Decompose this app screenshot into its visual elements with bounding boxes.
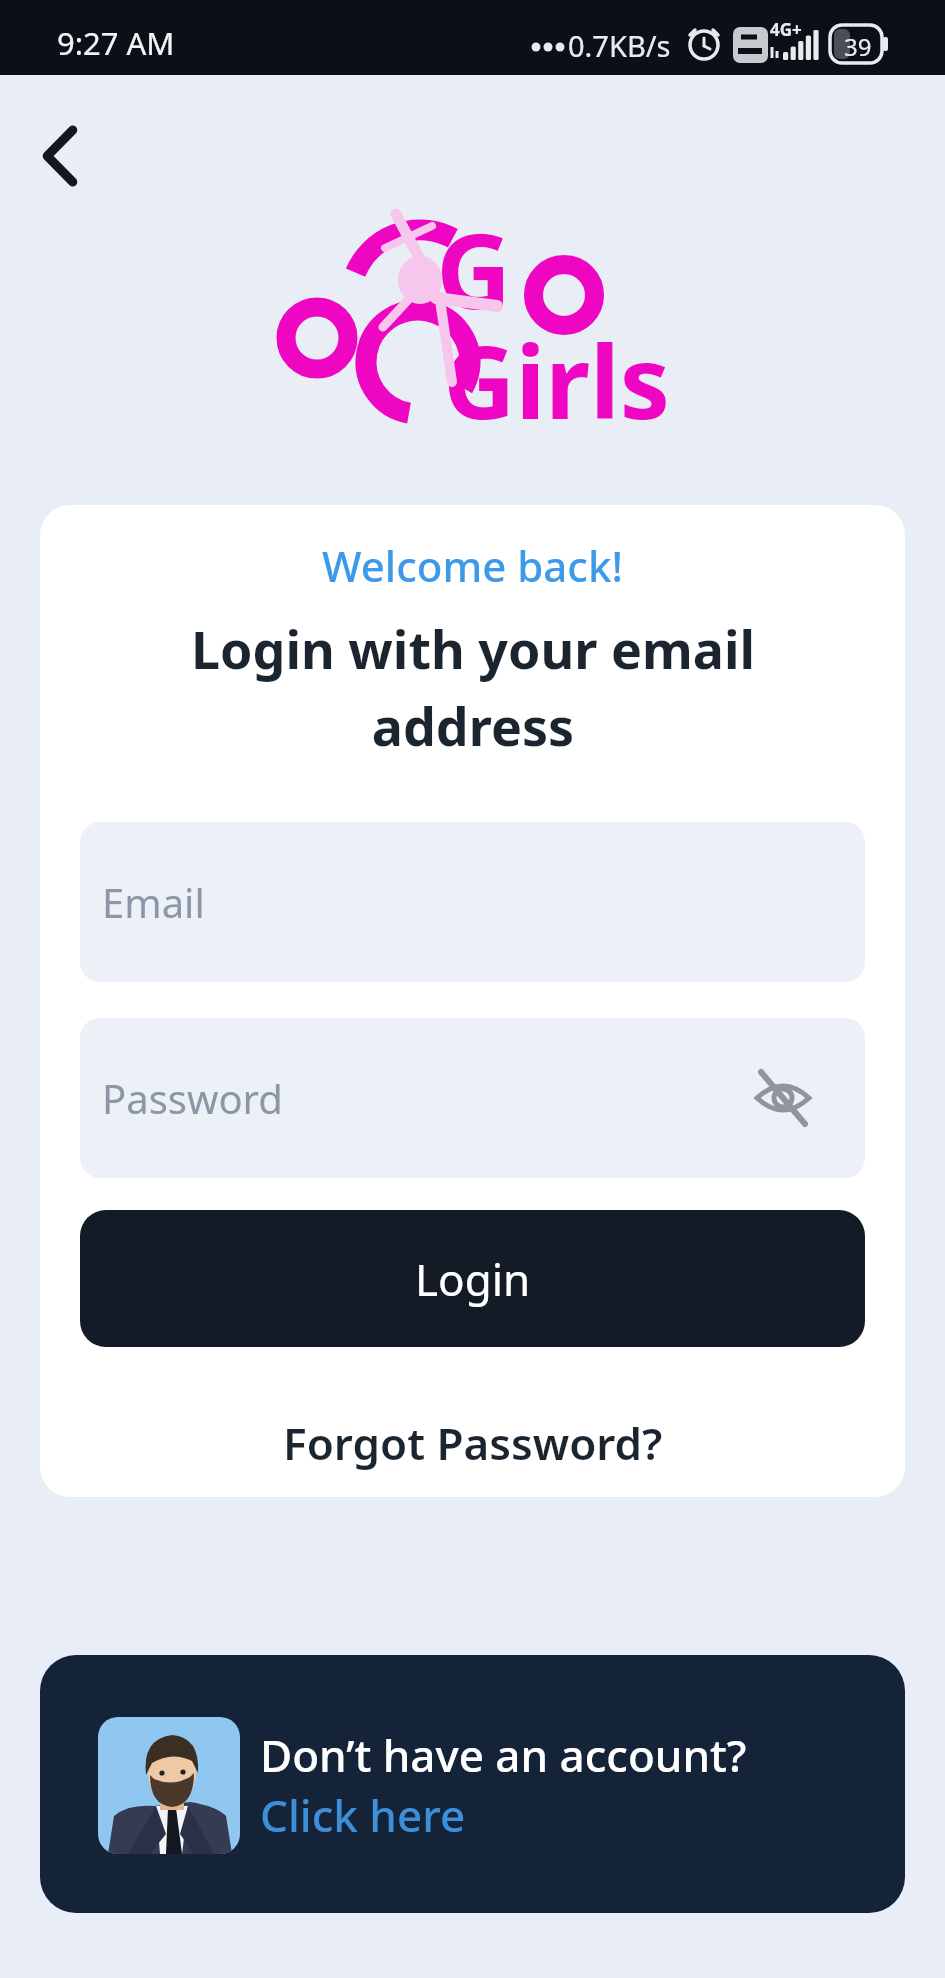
staticText: G [436,198,512,340]
button[interactable]: Login [80,1210,865,1347]
staticText: Forgot Password? [283,1413,663,1473]
staticText: Login [415,1249,531,1309]
staticText: Girls [443,312,670,448]
staticText: 4G+ [770,18,802,41]
staticText: Login with your email address [191,613,755,761]
staticText: Password [102,1071,283,1125]
button[interactable]: Don’t have an account? [40,1655,905,1913]
button[interactable]: Email [80,822,865,982]
button[interactable]: Password [80,1018,865,1178]
staticText: Welcome back! [322,537,623,594]
button[interactable] [24,118,96,194]
staticText: 9:27 AM [57,22,175,64]
staticText: 39 [844,30,872,63]
button[interactable] [753,1068,813,1128]
staticText: Don’t have an account? [260,1725,747,1785]
staticText: Email [102,875,205,929]
staticText: Click here [260,1785,466,1845]
staticText: 0.7KB/s [568,26,671,65]
button[interactable]: Forgot Password? [283,1413,663,1473]
